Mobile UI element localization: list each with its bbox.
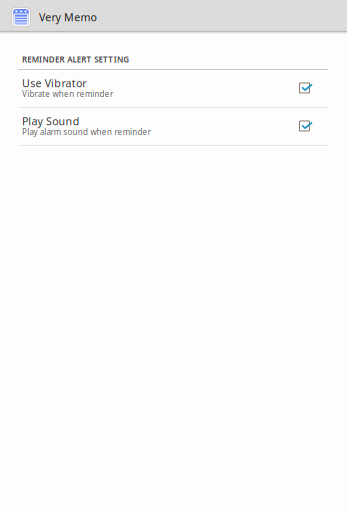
staticText: Vibrate when reminder bbox=[22, 89, 113, 99]
button[interactable]: Very Memo bbox=[0, 2, 129, 32]
staticText: Use Vibrator bbox=[22, 76, 86, 90]
staticText: REMINDER ALERT SETTING bbox=[22, 54, 129, 65]
staticText: Play alarm sound when reminder bbox=[22, 127, 151, 137]
button[interactable]: Use Vibrator bbox=[0, 70, 347, 107]
staticText: Play Sound bbox=[22, 114, 80, 128]
staticText: Very Memo bbox=[39, 10, 97, 24]
button[interactable]: Play Sound bbox=[0, 108, 347, 145]
